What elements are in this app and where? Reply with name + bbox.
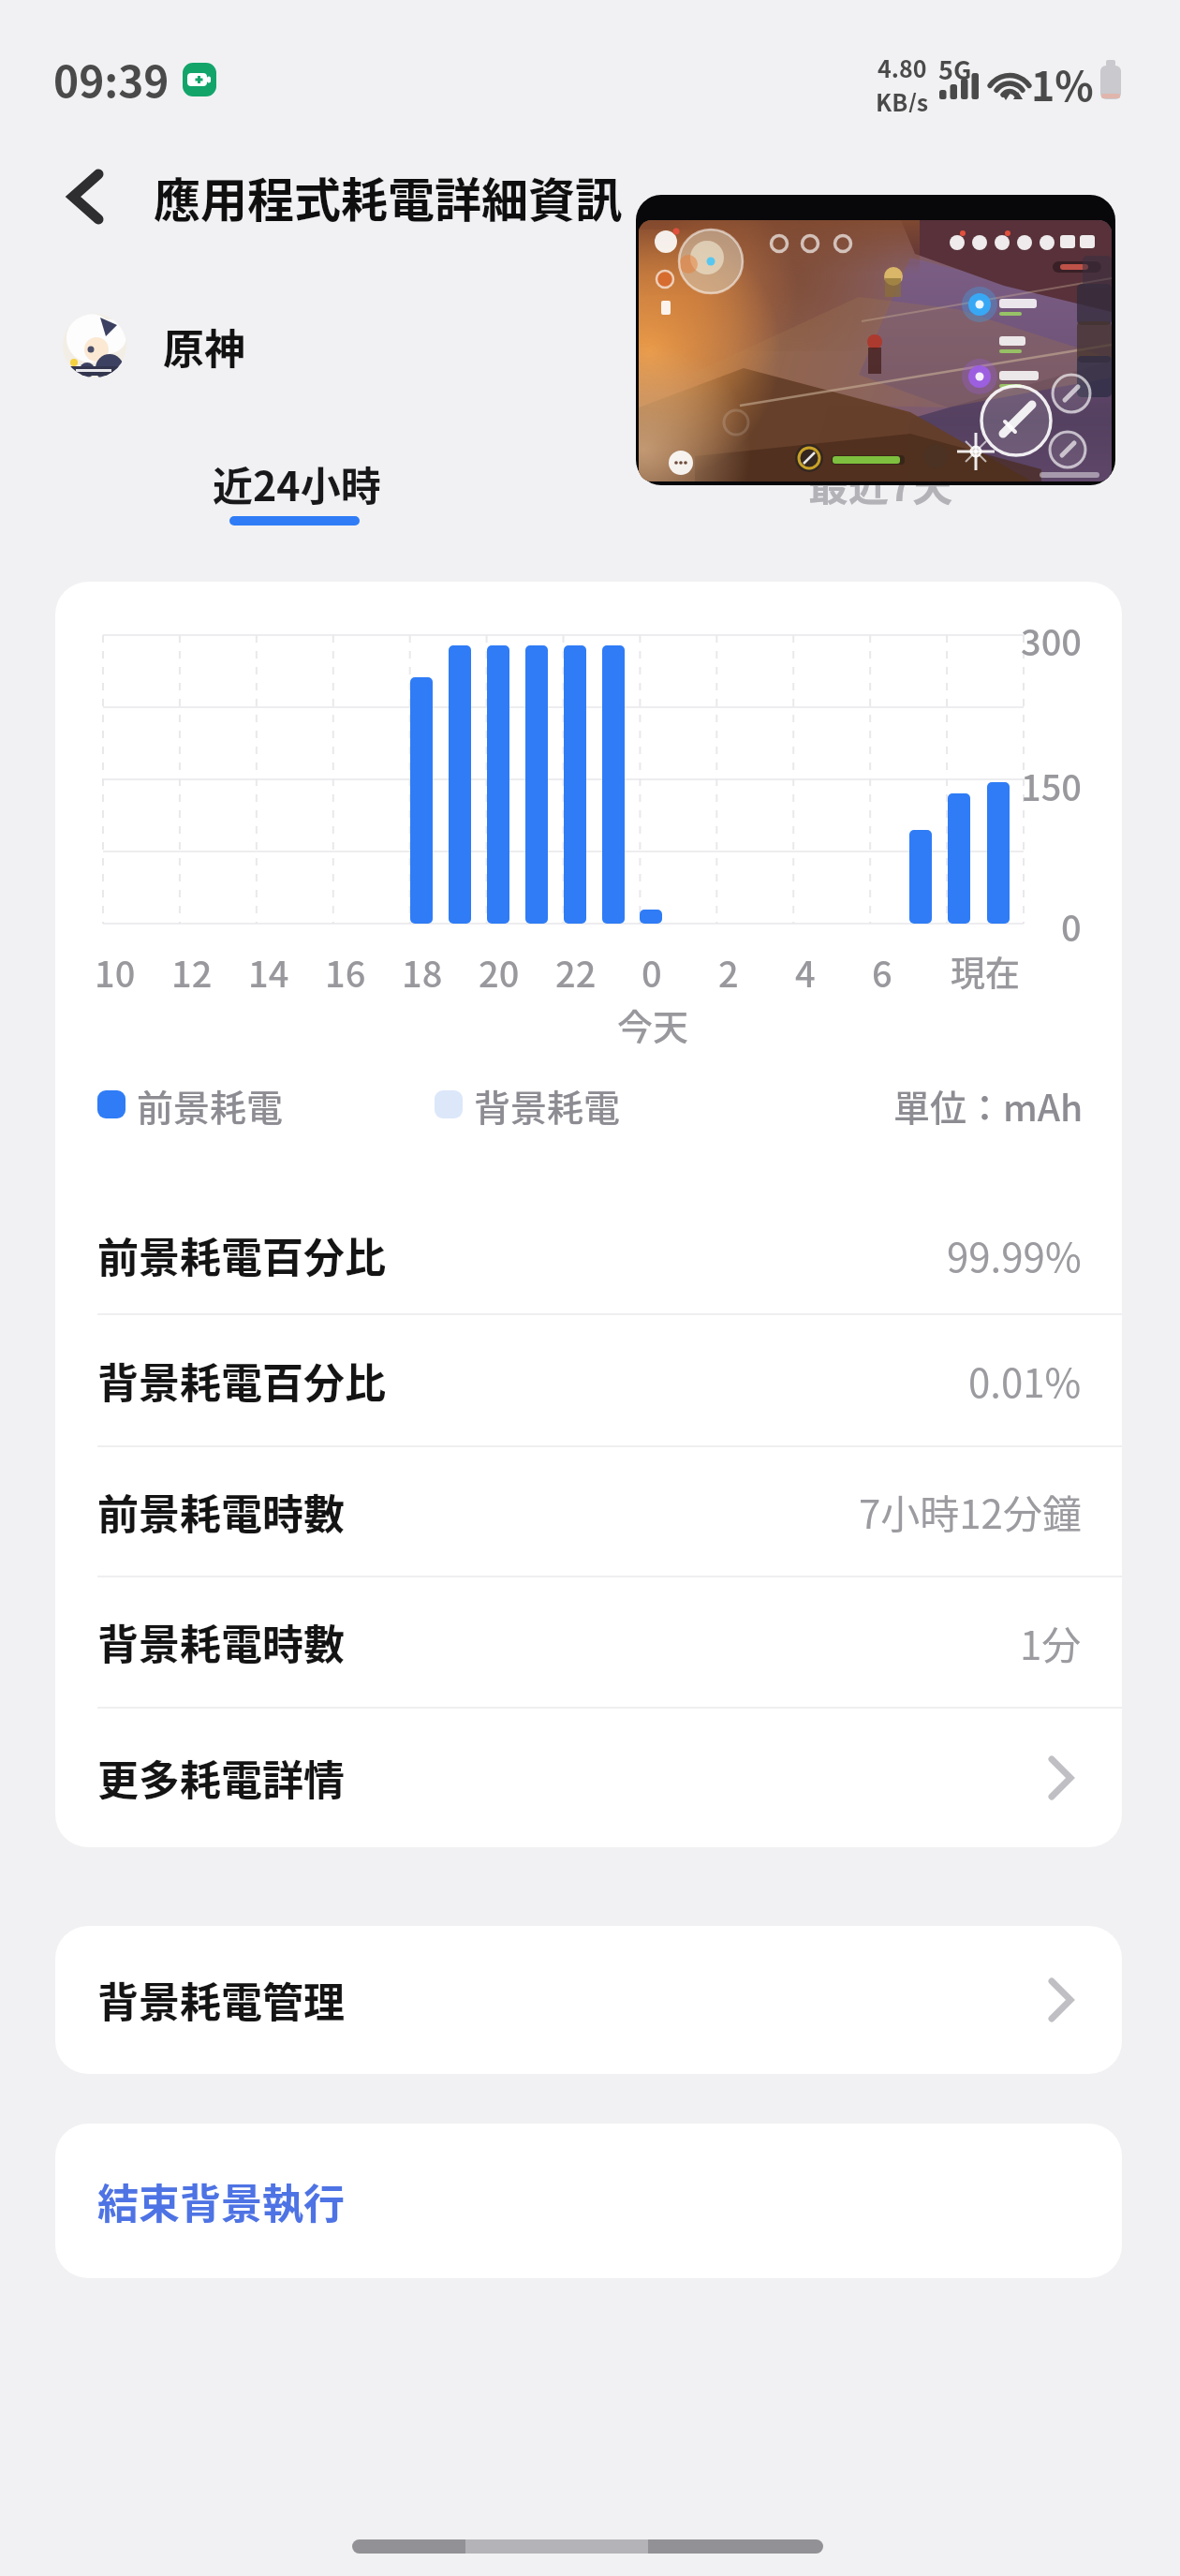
staticText: 背景耗電 [474,1079,621,1132]
staticText: 前景耗電時數 [97,1482,345,1542]
staticText: 0 [1061,900,1082,952]
staticText: 1分 [1020,1614,1082,1671]
staticText: 16 [325,946,366,998]
staticText: 300 [1021,614,1082,666]
button[interactable]: 更多耗電詳情 [59,1708,1122,1847]
button[interactable] [54,167,114,227]
button[interactable]: 前景耗電時數 [59,1446,1122,1577]
button[interactable] [636,195,1115,485]
staticText: 最近7天 [808,454,953,512]
staticText: 近24小時 [213,454,381,512]
staticText: 14 [248,946,289,998]
staticText: 單位：mAh [893,1079,1084,1132]
staticText: 4.80 [878,51,927,84]
staticText: 12 [171,946,213,998]
staticText: 5G [938,51,972,87]
staticText: 1% [1031,54,1094,107]
button[interactable]: 前景耗電百分比 [59,1195,1122,1314]
staticText: 現在 [951,946,1020,997]
staticText: 09:39 [53,48,170,111]
staticText: 背景耗電管理 [97,1970,345,2030]
staticText: 0 [642,946,662,998]
button[interactable] [202,450,390,543]
button[interactable] [796,450,983,543]
staticText: 原神 [163,317,245,377]
staticText: 4 [795,946,816,998]
staticText: 6 [872,946,892,998]
staticText: 18 [402,946,443,998]
staticText: 0.01% [968,1352,1082,1409]
staticText: KB/s [876,84,929,112]
staticText: 背景耗電時數 [97,1612,345,1672]
staticText: 150 [1021,760,1082,811]
staticText: 99.99% [947,1226,1082,1283]
staticText: 7小時12分鐘 [859,1483,1082,1540]
staticText: 結束背景執行 [97,2171,345,2231]
staticText: 22 [555,946,597,998]
staticText: 應用程式耗電詳細資訊 [154,163,622,230]
staticText: 背景耗電百分比 [97,1351,386,1411]
button[interactable]: 結束背景執行 [55,2124,1122,2278]
staticText: 前景耗電 [137,1079,284,1132]
staticText: 更多耗電詳情 [97,1748,345,1808]
staticText: 今天 [617,999,689,1050]
staticText: 2 [718,946,739,998]
button[interactable]: 背景耗電百分比 [59,1314,1122,1446]
button[interactable]: 背景耗電時數 [59,1577,1122,1708]
button[interactable]: 背景耗電管理 [55,1926,1122,2074]
staticText: 10 [95,946,136,998]
staticText: 前景耗電百分比 [97,1225,386,1285]
staticText: 20 [479,946,520,998]
